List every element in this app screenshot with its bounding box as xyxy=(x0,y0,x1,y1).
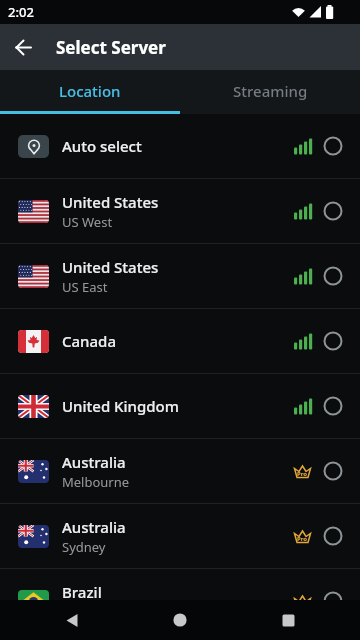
staticText: Auto select xyxy=(62,136,142,156)
staticText: United States xyxy=(62,192,159,212)
staticText: Brazil xyxy=(62,582,102,602)
button[interactable]: United States xyxy=(0,179,360,244)
button[interactable] xyxy=(164,604,196,636)
button[interactable]: Canada xyxy=(0,309,360,374)
staticText: US West xyxy=(62,213,113,231)
button[interactable]: Brazil xyxy=(0,569,360,634)
button[interactable] xyxy=(56,604,88,636)
staticText: Australia xyxy=(62,452,126,472)
staticText: Pro xyxy=(297,470,308,478)
staticText: 2:02 xyxy=(8,3,34,21)
button[interactable]: Australia xyxy=(0,439,360,504)
button[interactable]: Australia xyxy=(0,504,360,569)
button[interactable]: United States xyxy=(0,244,360,309)
staticText: Sydney xyxy=(62,538,106,556)
staticText: United Kingdom xyxy=(62,396,179,416)
staticText: Streaming xyxy=(233,81,308,101)
staticText: Location xyxy=(59,81,121,101)
button[interactable]: Location xyxy=(0,70,180,111)
staticText: Melbourne xyxy=(62,473,130,491)
button[interactable]: Auto select xyxy=(0,114,360,179)
staticText: São Paulo xyxy=(62,603,123,621)
button[interactable] xyxy=(272,604,304,636)
staticText: Pro xyxy=(297,535,308,543)
staticText: Select Server xyxy=(56,36,166,59)
button[interactable]: Streaming xyxy=(180,70,360,111)
staticText: United States xyxy=(62,257,159,277)
button[interactable] xyxy=(0,24,46,70)
staticText: Australia xyxy=(62,517,126,537)
staticText: US East xyxy=(62,278,108,296)
button[interactable]: United Kingdom xyxy=(0,374,360,439)
staticText: Canada xyxy=(62,331,116,351)
